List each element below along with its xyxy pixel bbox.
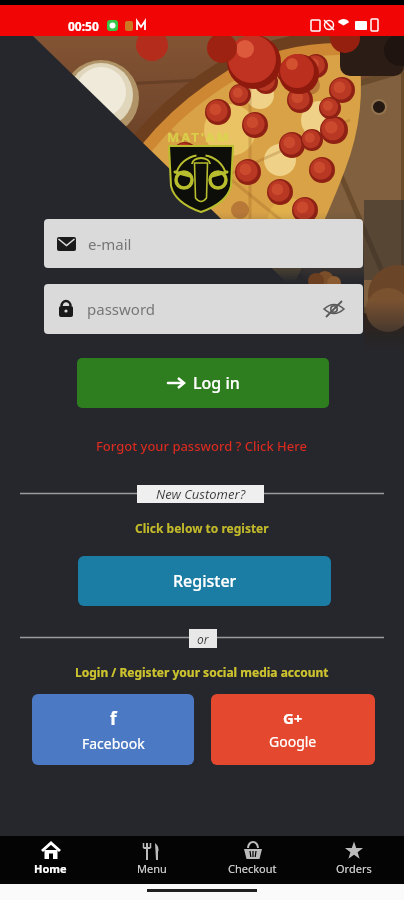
staticText: f: [110, 707, 117, 730]
staticText: Facebook: [82, 734, 145, 753]
button[interactable]: Log in: [77, 358, 329, 408]
staticText: Login / Register your social media accou…: [75, 664, 329, 680]
staticText: MAT'AM: [167, 128, 231, 146]
button[interactable]: Menu: [101, 836, 202, 884]
staticText: e-mail: [88, 234, 132, 254]
staticText: Register: [173, 570, 237, 592]
staticText: Google: [269, 732, 317, 751]
staticText: Menu: [137, 861, 167, 876]
button[interactable]: Checkout: [202, 836, 303, 884]
staticText: password: [87, 299, 323, 319]
staticText: 00:50: [68, 18, 99, 34]
staticText: Home: [34, 861, 67, 876]
staticText: or: [197, 631, 209, 647]
button[interactable]: Home: [0, 836, 101, 884]
staticText: Checkout: [228, 861, 277, 876]
staticText: New Customer?: [156, 485, 246, 503]
button[interactable]: f: [32, 694, 194, 765]
staticText: Log in: [193, 372, 240, 394]
staticText: Orders: [336, 861, 372, 876]
button[interactable]: Forgot your password ? Click Here: [0, 437, 404, 455]
button[interactable]: e-mail: [44, 219, 363, 268]
staticText: G+: [283, 708, 303, 728]
button[interactable]: password: [44, 284, 363, 334]
button[interactable]: G+: [211, 694, 375, 765]
staticText: Click below to register: [135, 520, 269, 536]
button[interactable]: Orders: [303, 836, 404, 884]
button[interactable]: Register: [78, 556, 331, 606]
staticText: Forgot your password ? Click Here: [96, 437, 308, 455]
